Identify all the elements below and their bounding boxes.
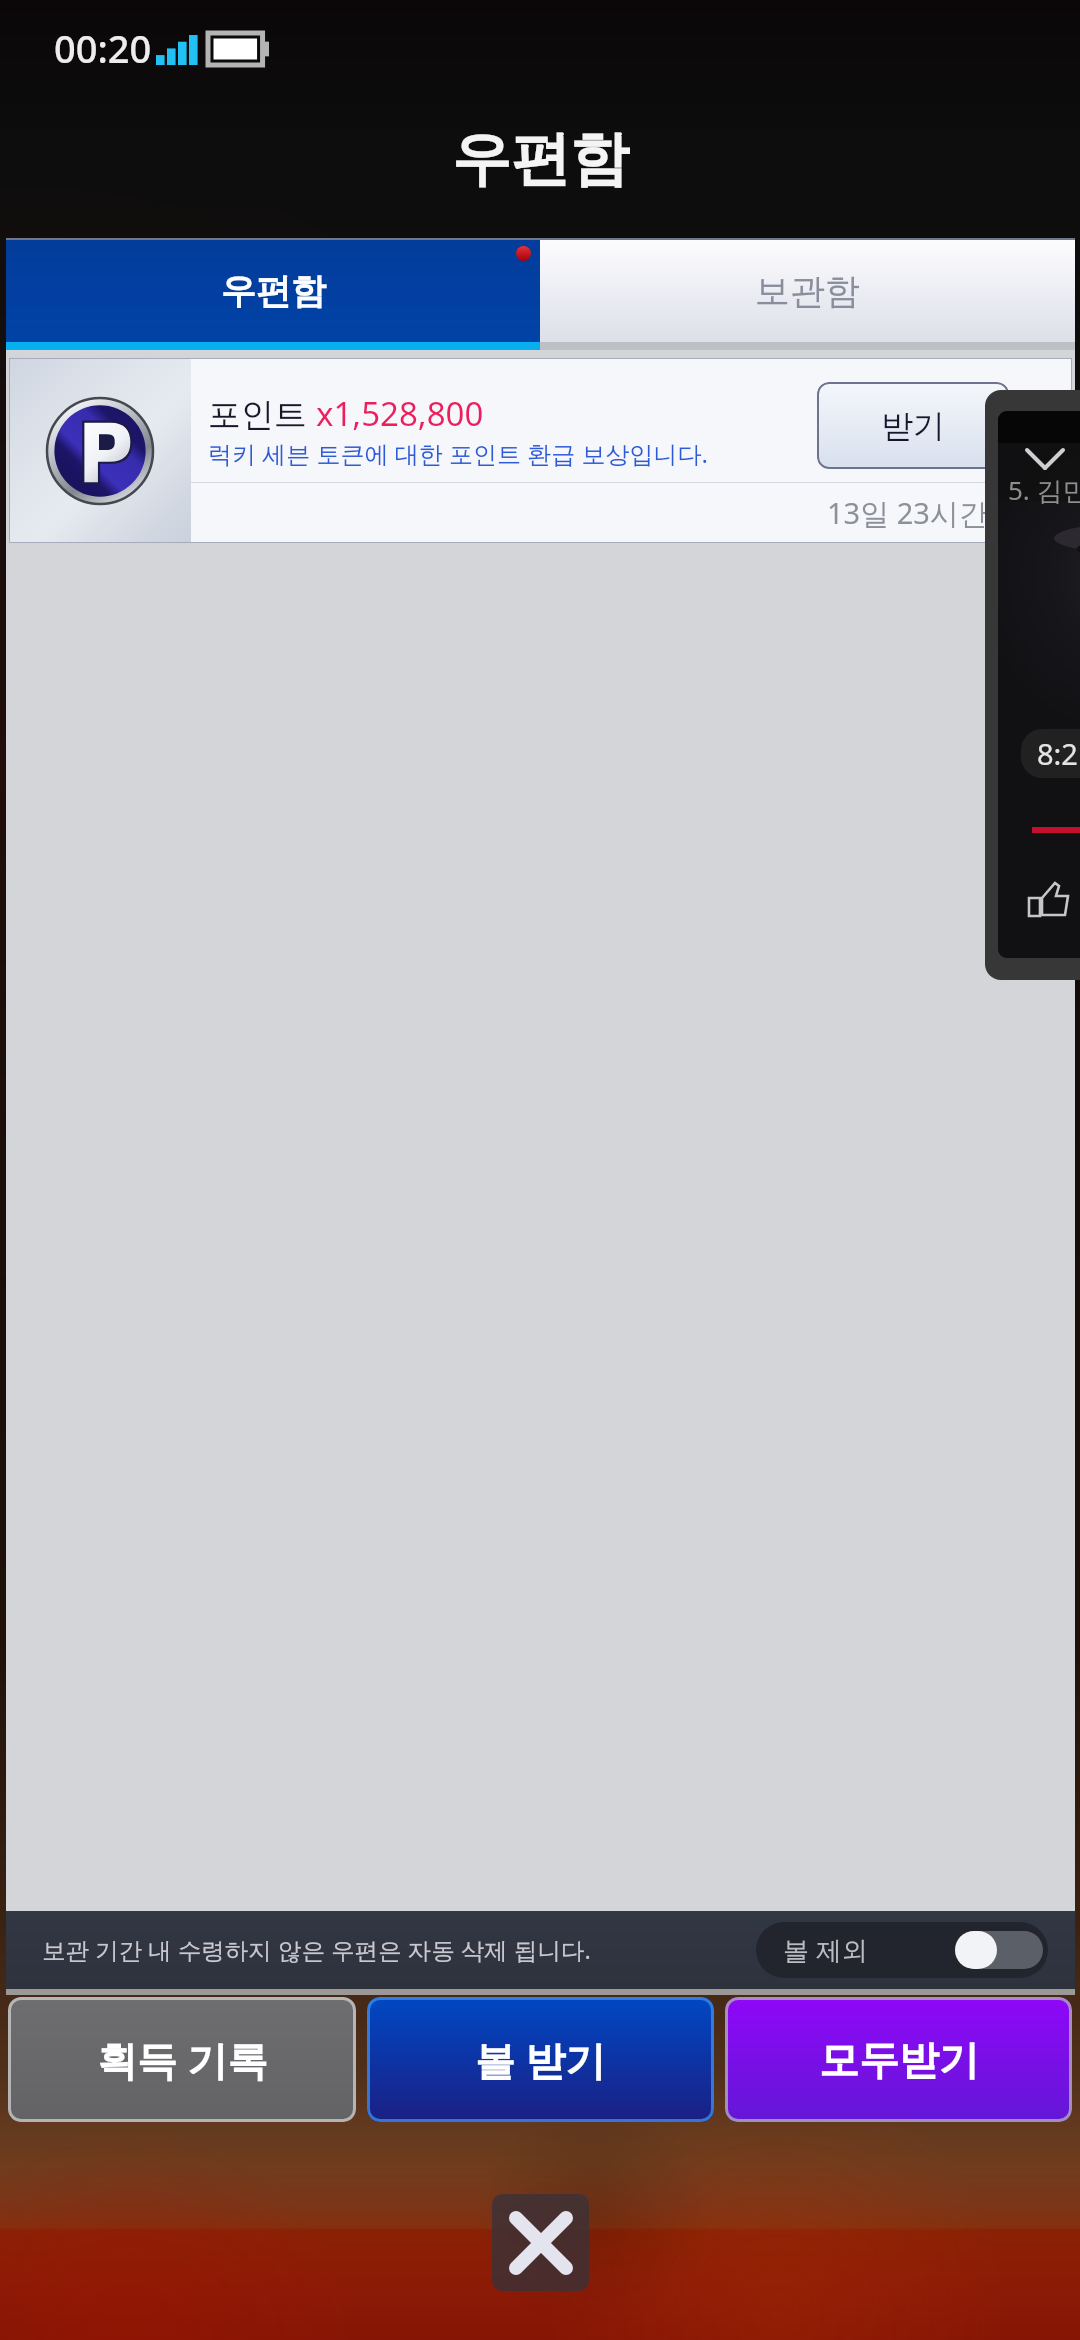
staticText: 5. 김민: [1008, 472, 1080, 508]
staticText: 받기: [881, 406, 945, 446]
staticText: 우편함: [452, 122, 629, 196]
staticText: 00:20: [54, 22, 152, 74]
staticText: 럭키 세븐 토큰에 대한 포인트 환급 보상입니다.: [208, 437, 708, 470]
staticText: 13일 23시간 59분: [827, 493, 1058, 533]
staticText: 8:21: [1037, 734, 1080, 773]
staticText: 보관 기간 내 수령하지 않은 우편은 자동 삭제 됩니다.: [42, 1934, 591, 1966]
button[interactable]: 볼 제외: [756, 1922, 1048, 1978]
button[interactable]: 포인트: [9, 358, 1072, 543]
staticText: 보관함: [755, 269, 860, 313]
button[interactable]: 보관함: [540, 240, 1075, 350]
staticText: 포인트: [208, 391, 316, 436]
staticText: 우편함: [221, 269, 326, 313]
staticText: 획득 기록: [97, 2032, 268, 2087]
button[interactable]: 획득 기록: [8, 1997, 356, 2122]
staticText: 모두받기: [819, 2035, 979, 2085]
button[interactable]: 모두받기: [725, 1997, 1072, 2122]
button[interactable]: 우편함: [6, 240, 540, 350]
staticText: 볼 제외: [783, 1932, 868, 1968]
button[interactable]: 받기: [817, 382, 1009, 469]
staticText: x1,528,800: [316, 391, 484, 436]
button[interactable]: Close: [492, 2194, 589, 2291]
staticText: 볼 받기: [475, 2032, 606, 2087]
button[interactable]: 볼 받기: [367, 1997, 714, 2122]
